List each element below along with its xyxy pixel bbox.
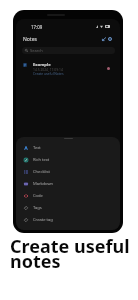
staticText: Create useful Notes	[33, 71, 64, 75]
staticText: Checklist	[33, 169, 50, 175]
staticText: Rich text	[33, 157, 50, 163]
staticText: Example	[33, 62, 51, 68]
staticText: notes	[10, 249, 61, 274]
button[interactable]: More options	[107, 36, 112, 42]
staticText: 14.5.2024, 17:09:14	[33, 67, 63, 71]
button[interactable]: Text	[16, 142, 120, 154]
button[interactable]: Markdown	[16, 178, 120, 190]
staticText: Notes	[23, 36, 37, 43]
staticText: Create tag	[33, 217, 53, 223]
staticText: Search	[30, 48, 43, 53]
button[interactable]: Rich text	[16, 154, 120, 166]
button[interactable]: Checklist	[16, 166, 120, 178]
staticText: Text	[33, 145, 41, 151]
button[interactable]: Tags	[16, 202, 120, 214]
staticText: Tags	[33, 205, 42, 211]
staticText: 17:09	[31, 24, 43, 30]
staticText: Markdown	[33, 181, 54, 187]
button[interactable]: Example	[19, 59, 118, 78]
button[interactable]: Sort notes	[101, 36, 106, 42]
button[interactable]: Create tag	[16, 214, 120, 226]
button[interactable]: Code	[16, 190, 120, 202]
staticText: Create useful	[10, 234, 130, 259]
button[interactable]: Search	[22, 47, 115, 54]
staticText: Code	[33, 193, 43, 199]
